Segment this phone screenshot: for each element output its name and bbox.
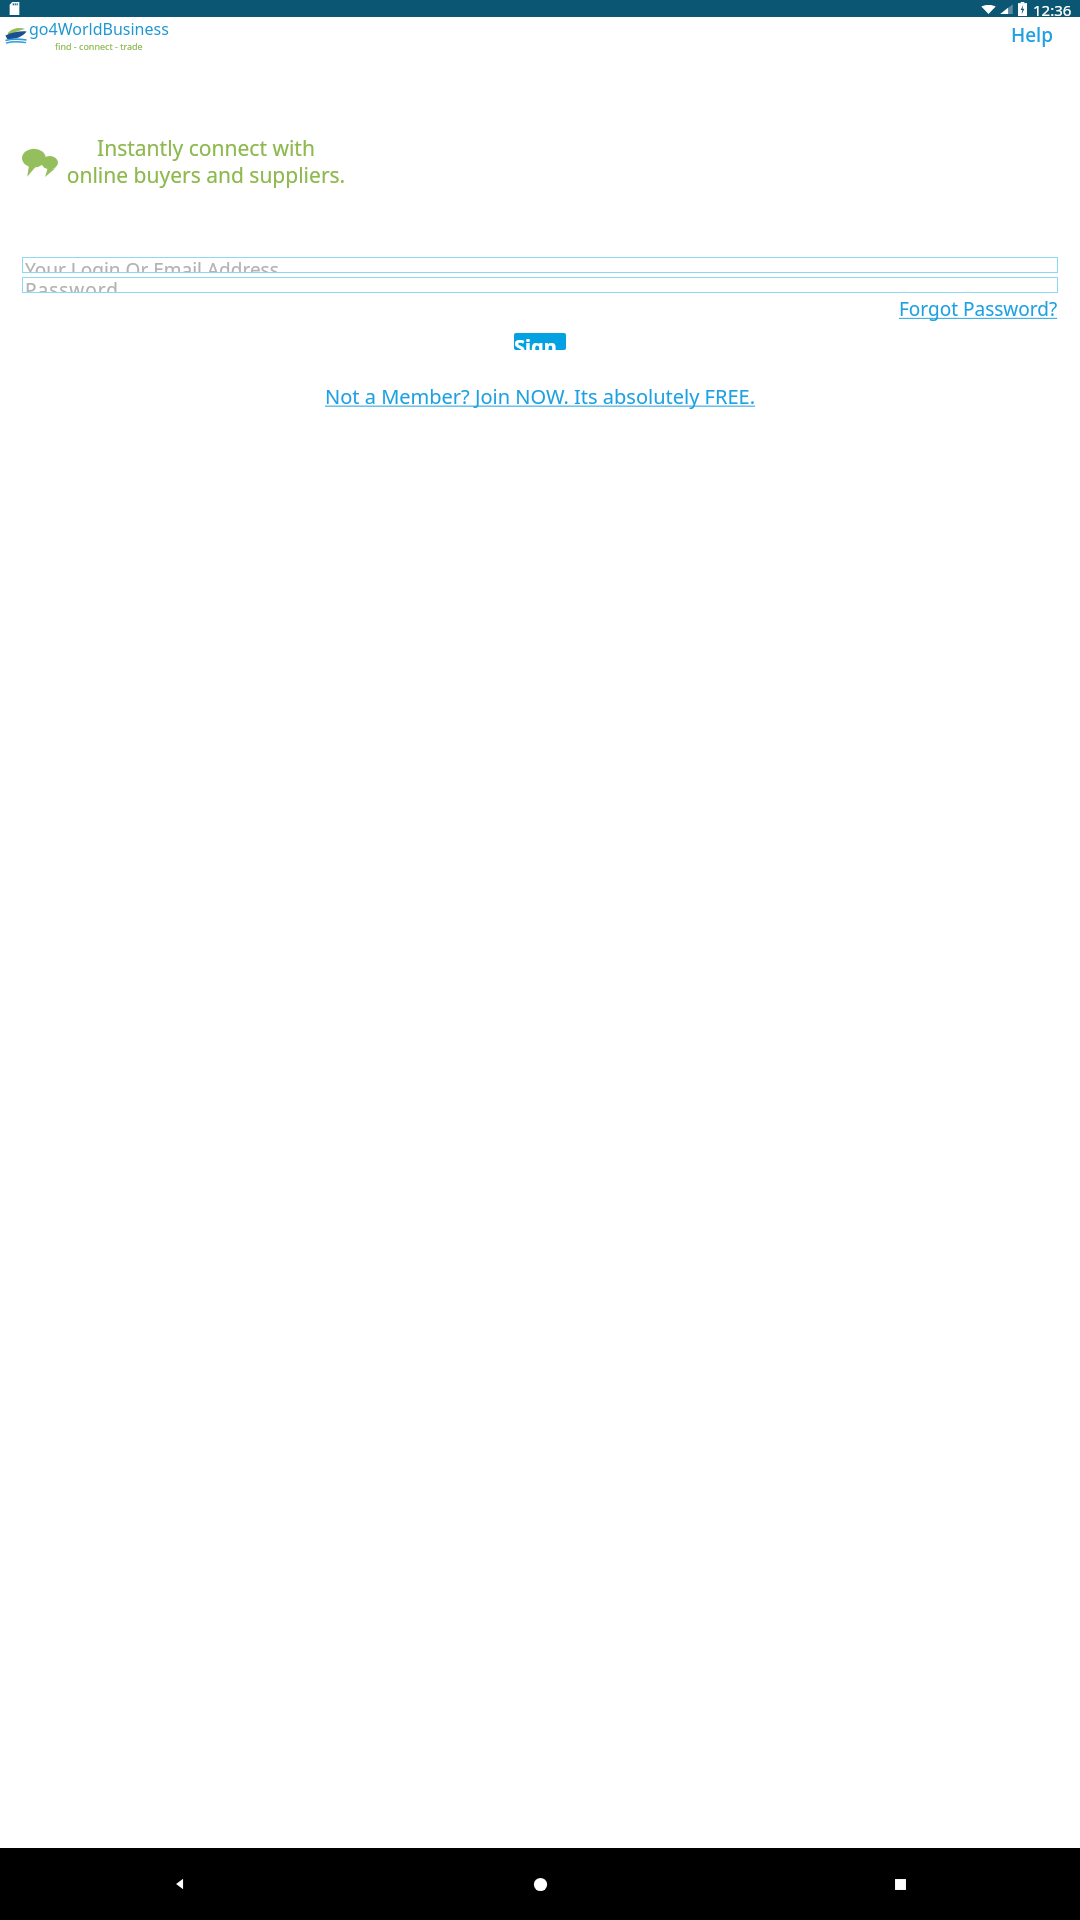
staticText: go4WorldBusiness [29, 18, 169, 40]
button[interactable]: Your Login Or Email Address [22, 257, 1058, 273]
button[interactable]: Recent apps [720, 1848, 1080, 1920]
staticText: Instantly connect with online buyers and… [66, 134, 346, 189]
button[interactable]: Help [1005, 18, 1060, 52]
staticText: Sign in [514, 333, 566, 350]
button[interactable]: Not a Member? Join NOW. Its absolutely F… [325, 383, 756, 410]
staticText: Your Login Or Email Address [25, 257, 279, 273]
button[interactable]: Password [22, 277, 1058, 293]
staticText: Forgot Password? [899, 296, 1058, 322]
staticText: Not a Member? Join NOW. Its absolutely F… [325, 383, 756, 410]
button[interactable]: Back [0, 1848, 360, 1920]
button[interactable]: Forgot Password? [899, 296, 1058, 322]
staticText: Password [25, 277, 119, 293]
button[interactable]: Sign in [514, 333, 566, 350]
button[interactable]: Home [360, 1848, 720, 1920]
staticText: 12:36 [1033, 0, 1072, 17]
staticText: find - connect - trade [55, 40, 143, 52]
staticText: Help [1011, 22, 1054, 48]
